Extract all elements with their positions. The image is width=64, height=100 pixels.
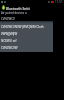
staticText: CVNCWCVNVW JWVCJNW (Cloth preferredx) [1, 25, 53, 29]
button[interactable]: CVNCWCVNVW JWVCJNW (Cloth preferredx) [0, 23, 53, 30]
staticText: Air paired devices a [1, 11, 27, 15]
staticText: 11:51 [55, 0, 63, 4]
staticText: VWWJJVNJW [1, 32, 18, 36]
button[interactable]: App icon [0, 4, 64, 11]
other: App icon [2, 5, 5, 10]
button[interactable]: CVNCWCV [0, 16, 64, 22]
staticText: CVNCWCVW [1, 46, 18, 50]
button[interactable]: NCDWU erf [0, 37, 53, 44]
staticText: CVNCWCV [1, 17, 15, 21]
button[interactable]: VWWJJVNJW [0, 30, 53, 37]
button[interactable]: CVNCWCVW [0, 44, 53, 51]
staticText: NCDWU erf [1, 39, 17, 43]
staticText: Bluetooth Setti [6, 6, 30, 10]
